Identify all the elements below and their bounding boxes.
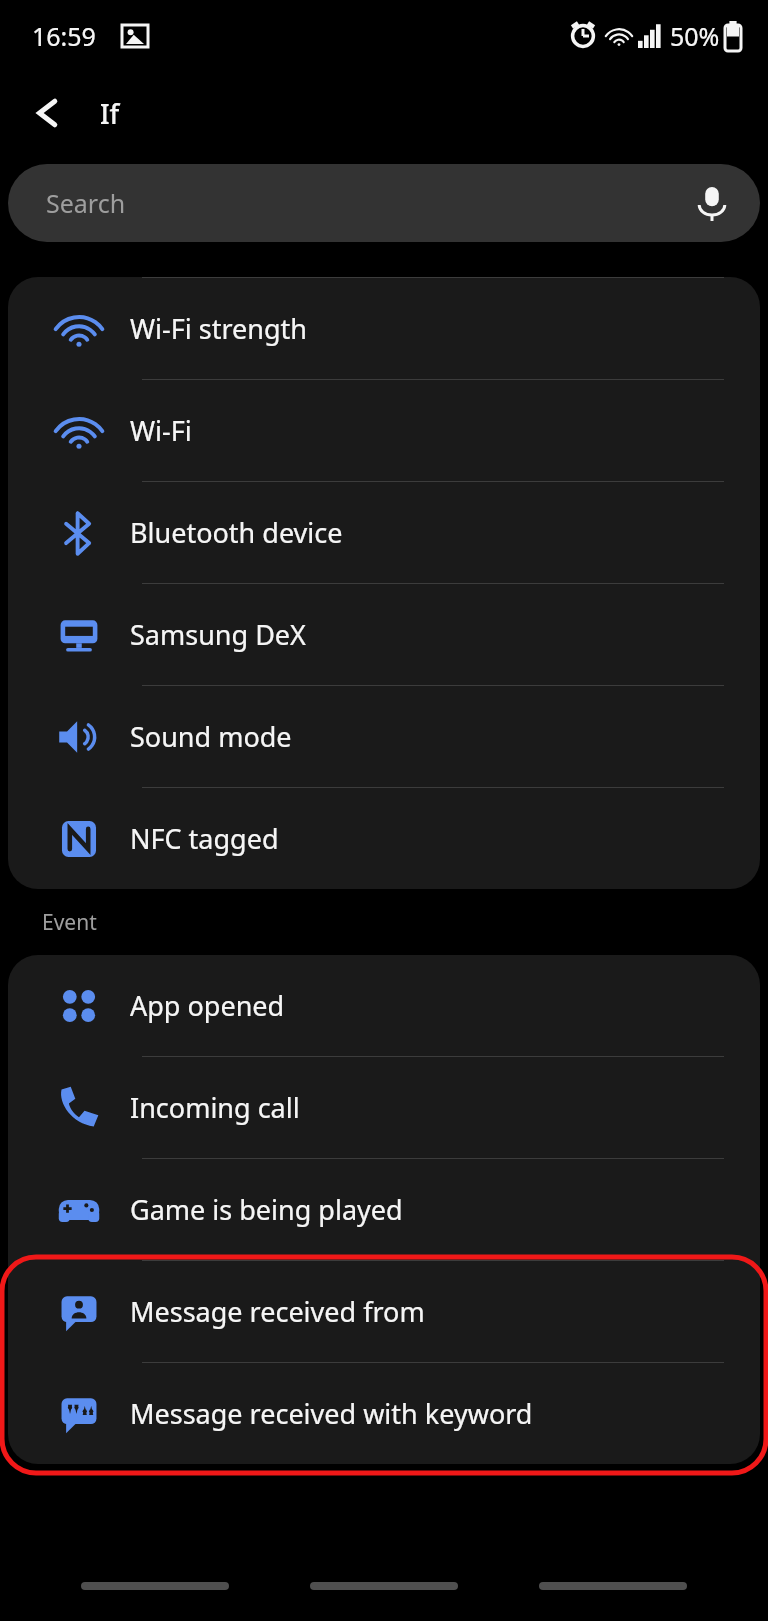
staticText: Wi-Fi strength bbox=[130, 310, 308, 347]
button[interactable]: Wi-Fi bbox=[8, 380, 760, 481]
staticText: 16:59 bbox=[32, 19, 96, 53]
button[interactable]: Game is being played bbox=[8, 1159, 760, 1260]
staticText: App opened bbox=[130, 987, 285, 1024]
button[interactable]: Message received from bbox=[8, 1261, 760, 1362]
button[interactable]: Bluetooth device bbox=[8, 482, 760, 583]
button[interactable]: Nav 2 bbox=[539, 1569, 687, 1603]
other: Voice search bbox=[692, 183, 732, 223]
staticText: Incoming call bbox=[130, 1089, 300, 1126]
button[interactable]: Message received with keyword bbox=[8, 1363, 760, 1464]
button[interactable]: Nav 0 bbox=[81, 1569, 229, 1603]
button[interactable]: Search bbox=[8, 164, 760, 242]
button[interactable]: Nav 1 bbox=[310, 1569, 458, 1603]
staticText: Samsung DeX bbox=[130, 616, 306, 653]
staticText: Bluetooth device bbox=[130, 514, 343, 551]
button[interactable]: Back bbox=[18, 85, 74, 141]
staticText: Event bbox=[42, 908, 97, 937]
staticText: Game is being played bbox=[130, 1191, 403, 1228]
staticText: NFC tagged bbox=[130, 820, 279, 857]
staticText: Sound mode bbox=[130, 718, 292, 755]
staticText: Search bbox=[46, 186, 126, 220]
button[interactable]: Sound mode bbox=[8, 686, 760, 787]
staticText: Wi-Fi bbox=[130, 412, 192, 449]
staticText: Message received with keyword bbox=[130, 1395, 533, 1432]
button[interactable]: App opened bbox=[8, 955, 760, 1056]
button[interactable]: NFC tagged bbox=[8, 788, 760, 889]
button[interactable]: Samsung DeX bbox=[8, 584, 760, 685]
staticText: 50% bbox=[670, 19, 720, 53]
staticText: If bbox=[100, 95, 120, 132]
button[interactable]: Incoming call bbox=[8, 1057, 760, 1158]
button[interactable]: Wi-Fi strength bbox=[8, 278, 760, 379]
staticText: Message received from bbox=[130, 1293, 425, 1330]
